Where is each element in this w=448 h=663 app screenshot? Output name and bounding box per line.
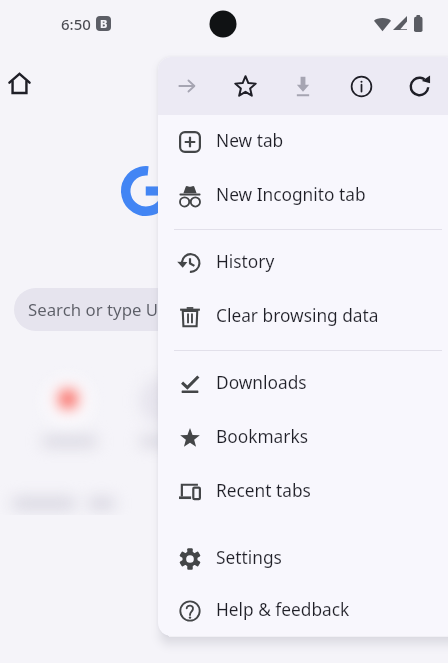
button[interactable]: New Incognito tab bbox=[158, 169, 448, 223]
button[interactable]: Settings bbox=[158, 532, 448, 586]
button[interactable]: Page info bbox=[332, 57, 390, 115]
button[interactable]: Download bbox=[274, 57, 332, 115]
staticText: Recent tabs bbox=[216, 479, 311, 503]
staticText: History bbox=[216, 250, 275, 274]
button[interactable]: History bbox=[158, 236, 448, 290]
staticText: Settings bbox=[216, 546, 282, 570]
staticText: Downloads bbox=[216, 371, 307, 395]
staticText: Search or type URL bbox=[28, 298, 178, 321]
staticText: Help & feedback bbox=[216, 598, 350, 622]
staticText: 6:50 bbox=[61, 14, 91, 34]
button[interactable]: Home bbox=[9, 73, 30, 94]
button[interactable]: Recent tabs bbox=[158, 465, 448, 519]
button[interactable]: Forward bbox=[158, 57, 216, 115]
staticText: Bookmarks bbox=[216, 425, 308, 449]
button[interactable]: Search or type URL bbox=[14, 288, 306, 331]
button[interactable]: New tab bbox=[158, 115, 448, 169]
button[interactable]: Help & feedback bbox=[158, 586, 448, 636]
staticText: New Incognito tab bbox=[216, 183, 366, 207]
button[interactable]: Clear browsing data bbox=[158, 290, 448, 344]
staticText: New tab bbox=[216, 129, 284, 153]
button[interactable]: Downloads bbox=[158, 357, 448, 411]
staticText: B bbox=[100, 16, 108, 31]
button[interactable]: Bookmark bbox=[216, 57, 274, 115]
staticText: Clear browsing data bbox=[216, 304, 379, 328]
button[interactable]: Bookmarks bbox=[158, 411, 448, 465]
button[interactable]: Reload bbox=[390, 57, 448, 115]
